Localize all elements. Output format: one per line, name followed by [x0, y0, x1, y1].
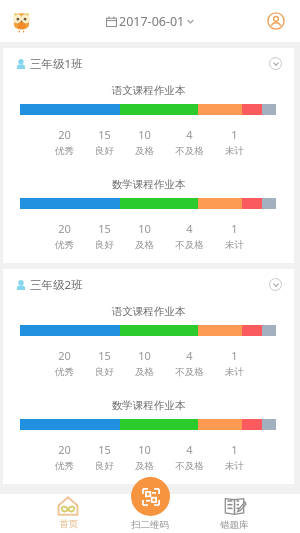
button[interactable]: 扫二维码	[120, 494, 180, 533]
staticText: 及格	[135, 145, 154, 157]
staticText: 未计	[225, 366, 244, 378]
staticText: 15	[98, 348, 111, 363]
other: 扫二维码	[131, 477, 170, 516]
staticText: 10	[138, 348, 151, 363]
staticText: 错题库	[220, 519, 249, 531]
staticText: 及格	[135, 239, 154, 251]
button[interactable]: 首页	[50, 494, 86, 530]
staticText: 4	[186, 442, 193, 457]
staticText: 15	[98, 127, 111, 142]
button[interactable]: 三年级1班	[3, 48, 294, 79]
staticText: 20	[58, 348, 71, 363]
staticText: 首页	[59, 518, 78, 530]
staticText: 不及格	[175, 145, 204, 157]
button[interactable]: 错题库	[216, 494, 252, 531]
button[interactable]: 三年级2班	[3, 269, 294, 300]
staticText: 未计	[225, 145, 244, 157]
button[interactable]: Account	[267, 12, 285, 30]
staticText: 语文课程作业本	[3, 305, 294, 318]
staticText: 10	[138, 221, 151, 236]
staticText: 扫二维码	[131, 519, 169, 531]
staticText: 良好	[95, 145, 114, 157]
staticText: 数学课程作业本	[3, 399, 294, 412]
staticText: 不及格	[175, 366, 204, 378]
staticText: 10	[138, 127, 151, 142]
staticText: 数学课程作业本	[3, 178, 294, 191]
staticText: 不及格	[175, 460, 204, 472]
staticText: 及格	[135, 366, 154, 378]
staticText: 良好	[95, 239, 114, 251]
staticText: 未计	[225, 460, 244, 472]
button[interactable]: Logo	[11, 11, 32, 32]
staticText: 1	[231, 127, 238, 142]
staticText: 20	[58, 127, 71, 142]
staticText: 未计	[225, 239, 244, 251]
staticText: 不及格	[175, 239, 204, 251]
staticText: 优秀	[55, 366, 74, 378]
staticText: 20	[58, 221, 71, 236]
staticText: 4	[186, 221, 193, 236]
staticText: 三年级2班	[30, 277, 83, 293]
staticText: 4	[186, 127, 193, 142]
staticText: 语文课程作业本	[3, 84, 294, 97]
staticText: 1	[231, 348, 238, 363]
staticText: 15	[98, 221, 111, 236]
staticText: 及格	[135, 460, 154, 472]
staticText: 10	[138, 442, 151, 457]
staticText: 三年级1班	[30, 56, 83, 72]
staticText: 良好	[95, 460, 114, 472]
staticText: 1	[231, 442, 238, 457]
staticText: 良好	[95, 366, 114, 378]
staticText: 2017-06-01	[119, 13, 185, 30]
staticText: 1	[231, 221, 238, 236]
staticText: 4	[186, 348, 193, 363]
staticText: 20	[58, 442, 71, 457]
staticText: 优秀	[55, 460, 74, 472]
button[interactable]: 2017-06-01	[106, 13, 194, 30]
staticText: 优秀	[55, 239, 74, 251]
staticText: 优秀	[55, 145, 74, 157]
staticText: 15	[98, 442, 111, 457]
